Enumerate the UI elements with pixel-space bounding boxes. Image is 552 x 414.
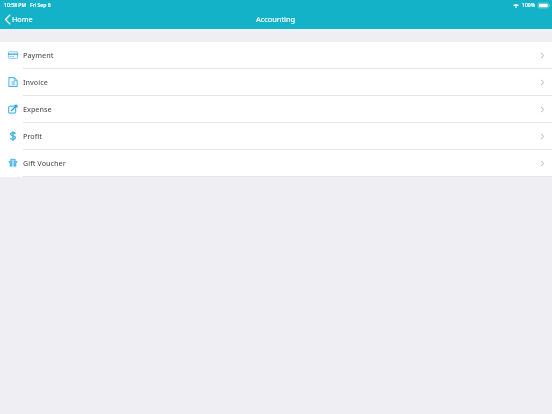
button[interactable]: Expense — [0, 96, 552, 122]
staticText: 100% — [522, 2, 536, 9]
staticText: Accounting — [256, 14, 296, 24]
staticText: 10:58 PM — [4, 2, 27, 9]
staticText: Invoice — [23, 77, 48, 87]
staticText: Gift Voucher — [23, 158, 66, 168]
staticText: Payment — [23, 50, 54, 60]
staticText: Home — [12, 14, 33, 24]
button[interactable]: Back to Home — [0, 11, 39, 29]
staticText: Fri Sep 6 — [30, 2, 51, 9]
staticText: Expense — [23, 104, 52, 114]
button[interactable]: Profit — [0, 123, 552, 149]
staticText: Profit — [23, 131, 42, 141]
button[interactable]: Payment — [0, 42, 552, 68]
button[interactable]: Invoice — [0, 69, 552, 95]
button[interactable]: Gift Voucher — [0, 150, 552, 176]
